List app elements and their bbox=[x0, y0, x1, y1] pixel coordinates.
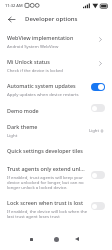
staticText: Dark theme bbox=[7, 123, 38, 130]
staticText: Lock screen when trust is lost bbox=[7, 199, 83, 206]
staticText: Developer options bbox=[25, 15, 78, 23]
button[interactable]: Recent apps bbox=[24, 232, 38, 246]
staticText: 11:32 AM bbox=[5, 3, 23, 8]
button[interactable]: Demo mode bbox=[0, 99, 112, 117]
button[interactable]: Home bbox=[49, 232, 63, 246]
button[interactable]: Toggle bbox=[91, 104, 105, 112]
staticText: Light bbox=[89, 128, 99, 134]
staticText: If enabled, trust agents will keep your … bbox=[7, 174, 88, 190]
button[interactable]: Toggle bbox=[91, 171, 105, 179]
button[interactable]: Dark theme bbox=[0, 117, 112, 139]
staticText: WebView implementation bbox=[7, 34, 74, 41]
button[interactable]: Trust agents only extend unl... bbox=[0, 157, 112, 193]
button[interactable]: Open bbox=[95, 34, 105, 44]
button[interactable]: Toggle bbox=[91, 202, 105, 210]
button[interactable]: Mi Unlock status bbox=[0, 51, 112, 75]
button[interactable]: Open bbox=[95, 58, 105, 68]
staticText: Trust agents only extend unl... bbox=[7, 165, 85, 172]
staticText: Quick settings developer tiles bbox=[7, 147, 83, 154]
button[interactable]: Back bbox=[0, 11, 22, 27]
button[interactable]: Lock screen when trust is lost bbox=[0, 193, 112, 219]
button[interactable]: WebView implementation bbox=[0, 27, 112, 51]
staticText: Mi Unlock status bbox=[7, 58, 50, 65]
staticText: If enabled, the device will lock when th… bbox=[7, 208, 88, 219]
button[interactable]: Light bbox=[88, 127, 105, 135]
staticText: Demo mode bbox=[7, 107, 39, 114]
button[interactable]: Toggle bbox=[91, 83, 105, 91]
staticText: Automatic system updates bbox=[7, 82, 76, 89]
button[interactable]: Quick settings developer tiles bbox=[0, 139, 112, 157]
staticText: Android System WebView bbox=[7, 43, 59, 49]
staticText: Light bbox=[7, 132, 18, 138]
staticText: Check if the device is locked bbox=[7, 67, 64, 73]
button[interactable]: Back bbox=[70, 232, 84, 246]
staticText: Apply updates when device restarts bbox=[7, 91, 79, 97]
button[interactable]: Automatic system updates bbox=[0, 75, 112, 99]
